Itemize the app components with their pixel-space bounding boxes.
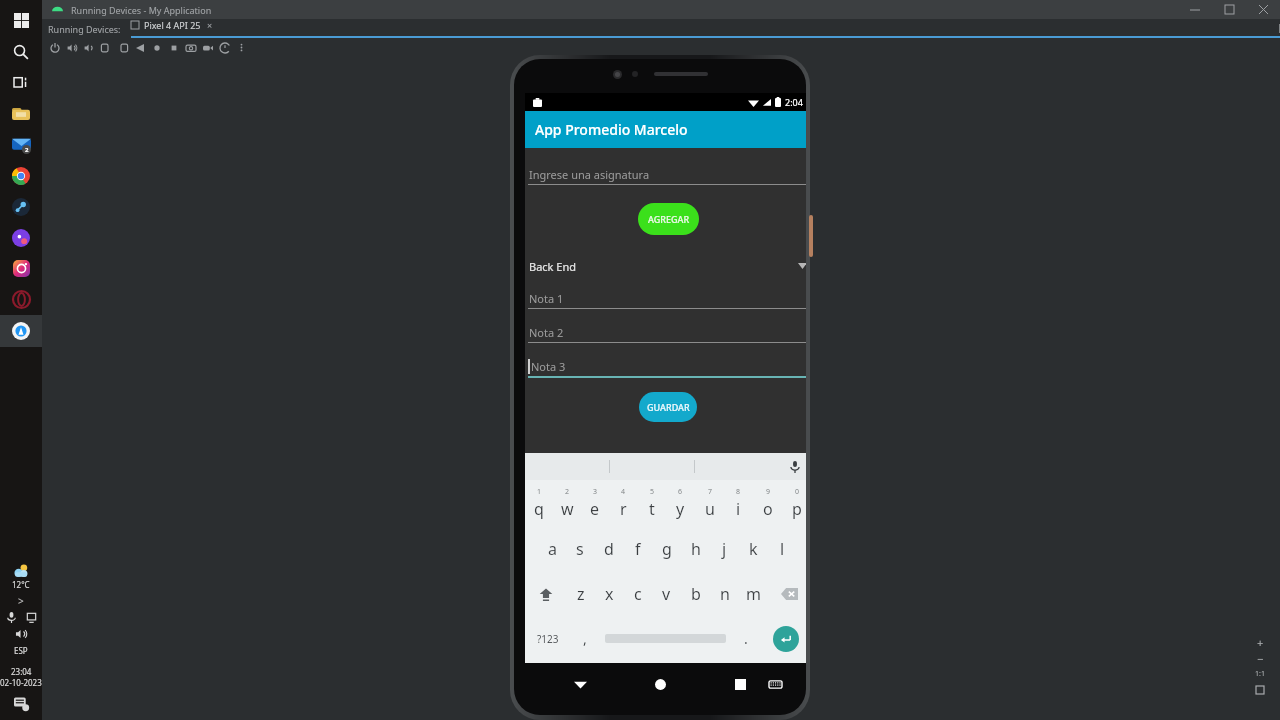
button[interactable]: App Promedio Marcelo: [525, 111, 806, 148]
button[interactable]: More: [233, 38, 250, 57]
button[interactable]: m: [739, 571, 768, 616]
staticText: c: [634, 583, 642, 605]
button[interactable]: Nota 2: [528, 322, 806, 343]
button[interactable]: 2: [0, 129, 42, 160]
button[interactable]: Display: [23, 609, 40, 626]
button[interactable]: 4: [609, 480, 637, 526]
button[interactable]: j: [710, 526, 739, 571]
button[interactable]: Minimize: [1178, 0, 1212, 19]
staticText: f: [635, 538, 641, 560]
button[interactable]: Overview: [165, 38, 182, 57]
button[interactable]: x: [595, 571, 623, 616]
button[interactable]: Recents: [722, 666, 758, 702]
button[interactable]: [0, 36, 42, 67]
button[interactable]: Back: [131, 38, 148, 57]
button[interactable]: [0, 284, 42, 315]
staticText: 2: [565, 487, 570, 497]
button[interactable]: c: [623, 571, 652, 616]
button[interactable]: Shift: [525, 571, 567, 616]
button[interactable]: Microphone: [3, 609, 20, 626]
button[interactable]: 7: [695, 480, 724, 526]
button[interactable]: Zoom in: [1250, 634, 1270, 650]
button[interactable]: Zoom out: [1250, 650, 1270, 666]
button[interactable]: Volume up: [63, 38, 80, 57]
button[interactable]: f: [623, 526, 652, 571]
button[interactable]: a: [538, 526, 566, 571]
button[interactable]: [0, 222, 42, 253]
button[interactable]: Power: [46, 38, 63, 57]
button[interactable]: Rotate left: [97, 38, 114, 57]
button[interactable]: Backspace: [768, 571, 806, 616]
button[interactable]: Enter: [760, 616, 806, 661]
button[interactable]: Voice input: [779, 453, 806, 480]
staticText: o: [763, 498, 773, 520]
staticText: 3: [593, 487, 598, 497]
button[interactable]: Back: [562, 666, 598, 702]
button[interactable]: 23:04: [0, 664, 42, 690]
button[interactable]: Rotate right: [114, 38, 131, 57]
button[interactable]: Android Studio: [0, 315, 42, 347]
button[interactable]: [0, 253, 42, 284]
button[interactable]: [0, 98, 42, 129]
button[interactable]: Maximize: [1212, 0, 1246, 19]
button[interactable]: GUARDAR: [639, 392, 697, 422]
button[interactable]: ,: [570, 616, 599, 661]
button[interactable]: Actual size: [1250, 666, 1270, 682]
staticText: j: [722, 538, 727, 560]
button[interactable]: [0, 160, 42, 191]
button[interactable]: Fit to window: [1250, 682, 1270, 698]
button[interactable]: [0, 67, 42, 98]
button[interactable]: [0, 191, 42, 222]
staticText: .: [744, 629, 748, 648]
button[interactable]: 3: [581, 480, 609, 526]
button[interactable]: Ingrese una asignatura: [528, 164, 806, 185]
button[interactable]: .: [731, 616, 760, 661]
button[interactable]: Nota 3: [528, 356, 806, 378]
button[interactable]: s: [566, 526, 594, 571]
button[interactable]: 8: [724, 480, 753, 526]
button[interactable]: Switch keyboard: [758, 667, 792, 701]
button[interactable]: Volume: [1, 626, 41, 642]
button[interactable]: l: [768, 526, 797, 571]
staticText: Nota 1: [529, 291, 564, 306]
button[interactable]: Weather: [1, 559, 41, 593]
button[interactable]: Volume down: [80, 38, 97, 57]
button[interactable]: h: [681, 526, 710, 571]
button[interactable]: 5: [637, 480, 666, 526]
staticText: 1: [537, 487, 542, 497]
button[interactable]: 9: [753, 480, 782, 526]
button[interactable]: k: [739, 526, 768, 571]
button[interactable]: b: [681, 571, 710, 616]
button[interactable]: ESP: [1, 642, 41, 658]
button[interactable]: v: [652, 571, 681, 616]
button[interactable]: AGREGAR: [638, 203, 699, 235]
button[interactable]: n: [710, 571, 739, 616]
button[interactable]: Record: [199, 38, 216, 57]
button[interactable]: Close: [1246, 0, 1280, 19]
button[interactable]: Pixel 4 API 25: [131, 19, 1280, 38]
button[interactable]: 6: [666, 480, 695, 526]
button[interactable]: d: [594, 526, 623, 571]
button[interactable]: Show hidden icons: [1, 593, 41, 609]
button[interactable]: 0: [782, 480, 806, 526]
button[interactable]: [0, 5, 42, 36]
button[interactable]: ?123: [525, 616, 570, 661]
button[interactable]: 2: [553, 480, 581, 526]
button[interactable]: Power button: [809, 215, 813, 257]
staticText: Running Devices:: [48, 23, 121, 35]
button[interactable]: Back End: [525, 251, 806, 281]
button[interactable]: Home: [148, 38, 165, 57]
staticText: 23:04: [11, 666, 32, 677]
button[interactable]: Nota 1: [528, 288, 806, 309]
button[interactable]: Snapshots: [216, 38, 233, 57]
button[interactable]: Screenshot: [182, 38, 199, 57]
button[interactable]: g: [652, 526, 681, 571]
button[interactable]: Space: [599, 616, 731, 661]
button[interactable]: Notifications: [0, 690, 42, 716]
button[interactable]: z: [567, 571, 595, 616]
button[interactable]: Home: [642, 666, 678, 702]
button[interactable]: 1: [525, 480, 553, 526]
